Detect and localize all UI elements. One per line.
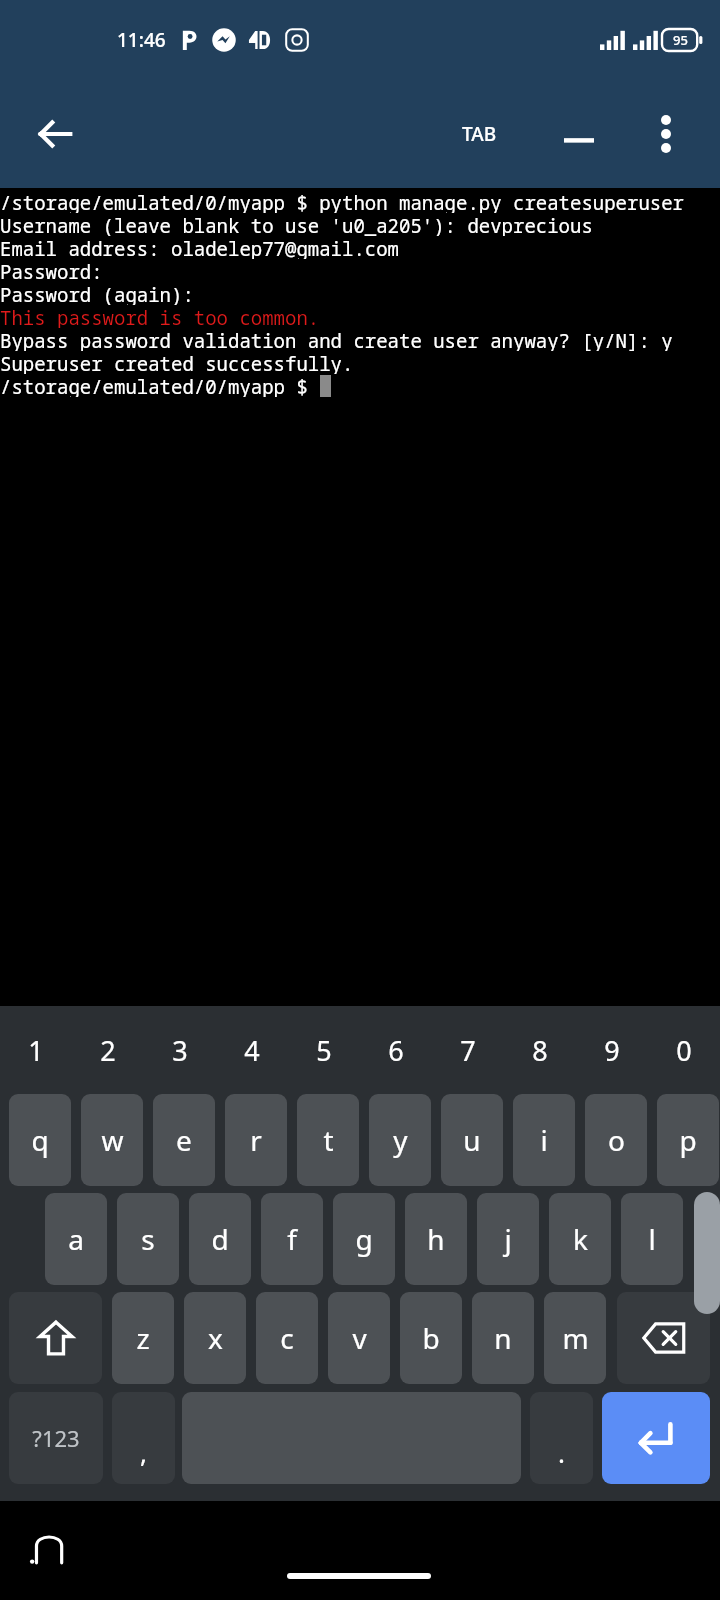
staticText: /storage/emulated/0/myapp $ [0,374,320,397]
staticText: l [648,1220,656,1258]
staticText: ?123 [32,1423,80,1453]
button[interactable]: f [261,1193,323,1285]
staticText: t [323,1121,334,1159]
staticText: 7 [460,1032,476,1069]
staticText: 6 [388,1032,404,1069]
staticText: w [101,1121,124,1159]
staticText: z [136,1319,150,1357]
button[interactable]: 9 [576,1014,648,1086]
staticText: o [608,1121,625,1159]
staticText: TAB [462,121,497,147]
button[interactable]: Hide keyboard [14,1515,82,1583]
button[interactable]: b [400,1292,462,1384]
staticText: d [211,1220,229,1258]
button[interactable]: . [530,1392,593,1484]
staticText: Bypass password validation and create us… [0,328,673,351]
button[interactable]: c [256,1292,318,1384]
staticText: Username (leave blank to use 'u0_a205'):… [0,213,593,236]
button[interactable]: Home [287,1573,431,1579]
staticText: 4 [244,1032,260,1069]
button[interactable]: x [184,1292,246,1384]
staticText: n [494,1319,512,1357]
button[interactable]: v [328,1292,390,1384]
button[interactable]: w [81,1094,143,1186]
button[interactable]: 3 [144,1014,216,1086]
staticText: 9 [604,1032,620,1069]
button[interactable]: z [112,1292,174,1384]
button[interactable]: 4 [216,1014,288,1086]
staticText: 0 [676,1032,692,1069]
button[interactable]: d [189,1193,251,1285]
button[interactable]: More options [636,104,696,164]
staticText: . [558,1435,565,1470]
button[interactable]: Minimize [548,103,610,165]
button[interactable]: 5 [288,1014,360,1086]
staticText: 11:46 [117,27,166,53]
button[interactable]: 6 [360,1014,432,1086]
button[interactable]: o [585,1094,647,1186]
staticText: e [176,1121,192,1159]
button[interactable]: e [153,1094,215,1186]
button[interactable]: g [333,1193,395,1285]
button[interactable]: j [477,1193,539,1285]
staticText: r [250,1121,262,1159]
staticText: , [140,1435,147,1470]
staticText: p [679,1121,697,1159]
button[interactable]: Backspace [617,1292,710,1384]
button[interactable]: 0 [648,1014,720,1086]
staticText: 2 [100,1032,116,1069]
button[interactable]: s [117,1193,179,1285]
staticText: y [393,1121,408,1159]
staticText: u [463,1121,481,1159]
staticText: 8 [532,1032,548,1069]
button[interactable]: r [225,1094,287,1186]
button[interactable]: h [405,1193,467,1285]
staticText: 5 [316,1032,332,1069]
staticText: v [352,1319,367,1357]
staticText: c [280,1319,294,1357]
button[interactable]: m [544,1292,606,1384]
button[interactable]: i [513,1094,575,1186]
button[interactable]: Enter [602,1392,710,1484]
staticText: s [141,1220,155,1258]
staticText: This password is too common. [0,305,320,328]
staticText: 1 [28,1032,44,1069]
button[interactable]: TAB [452,111,507,157]
button[interactable]: p [657,1094,719,1186]
staticText: q [31,1121,49,1159]
staticText: h [427,1220,445,1258]
button[interactable]: Shift [9,1292,102,1384]
button[interactable]: 7 [432,1014,504,1086]
button[interactable]: 8 [504,1014,576,1086]
button[interactable]: y [369,1094,431,1186]
staticText: j [504,1220,512,1258]
staticText: k [573,1220,588,1258]
staticText: a [68,1220,84,1258]
button[interactable]: l [621,1193,683,1285]
button[interactable]: u [441,1094,503,1186]
staticText: m [562,1319,589,1357]
button[interactable]: q [9,1094,71,1186]
button[interactable]: k [549,1193,611,1285]
button[interactable]: ?123 [9,1392,103,1484]
staticText: b [422,1319,440,1357]
staticText: g [355,1220,373,1258]
staticText: Password (again): [0,282,194,305]
button[interactable]: t [297,1094,359,1186]
button[interactable]: n [472,1292,534,1384]
button[interactable]: 2 [72,1014,144,1086]
staticText: Superuser created successfully. [0,351,354,374]
button[interactable]: 1 [0,1014,72,1086]
button[interactable]: Back [22,101,88,167]
staticText: Password: [0,259,103,282]
staticText: i [540,1121,548,1159]
staticText: x [208,1319,223,1357]
button[interactable]: a [45,1193,107,1285]
staticText: Email address: oladelep77@gmail.com [0,236,400,259]
button[interactable]: , [112,1392,175,1484]
staticText: 3 [172,1032,188,1069]
staticText: 95 [673,31,688,49]
staticText: f [287,1220,297,1258]
staticText: /storage/emulated/0/myapp $ python manag… [0,190,685,213]
